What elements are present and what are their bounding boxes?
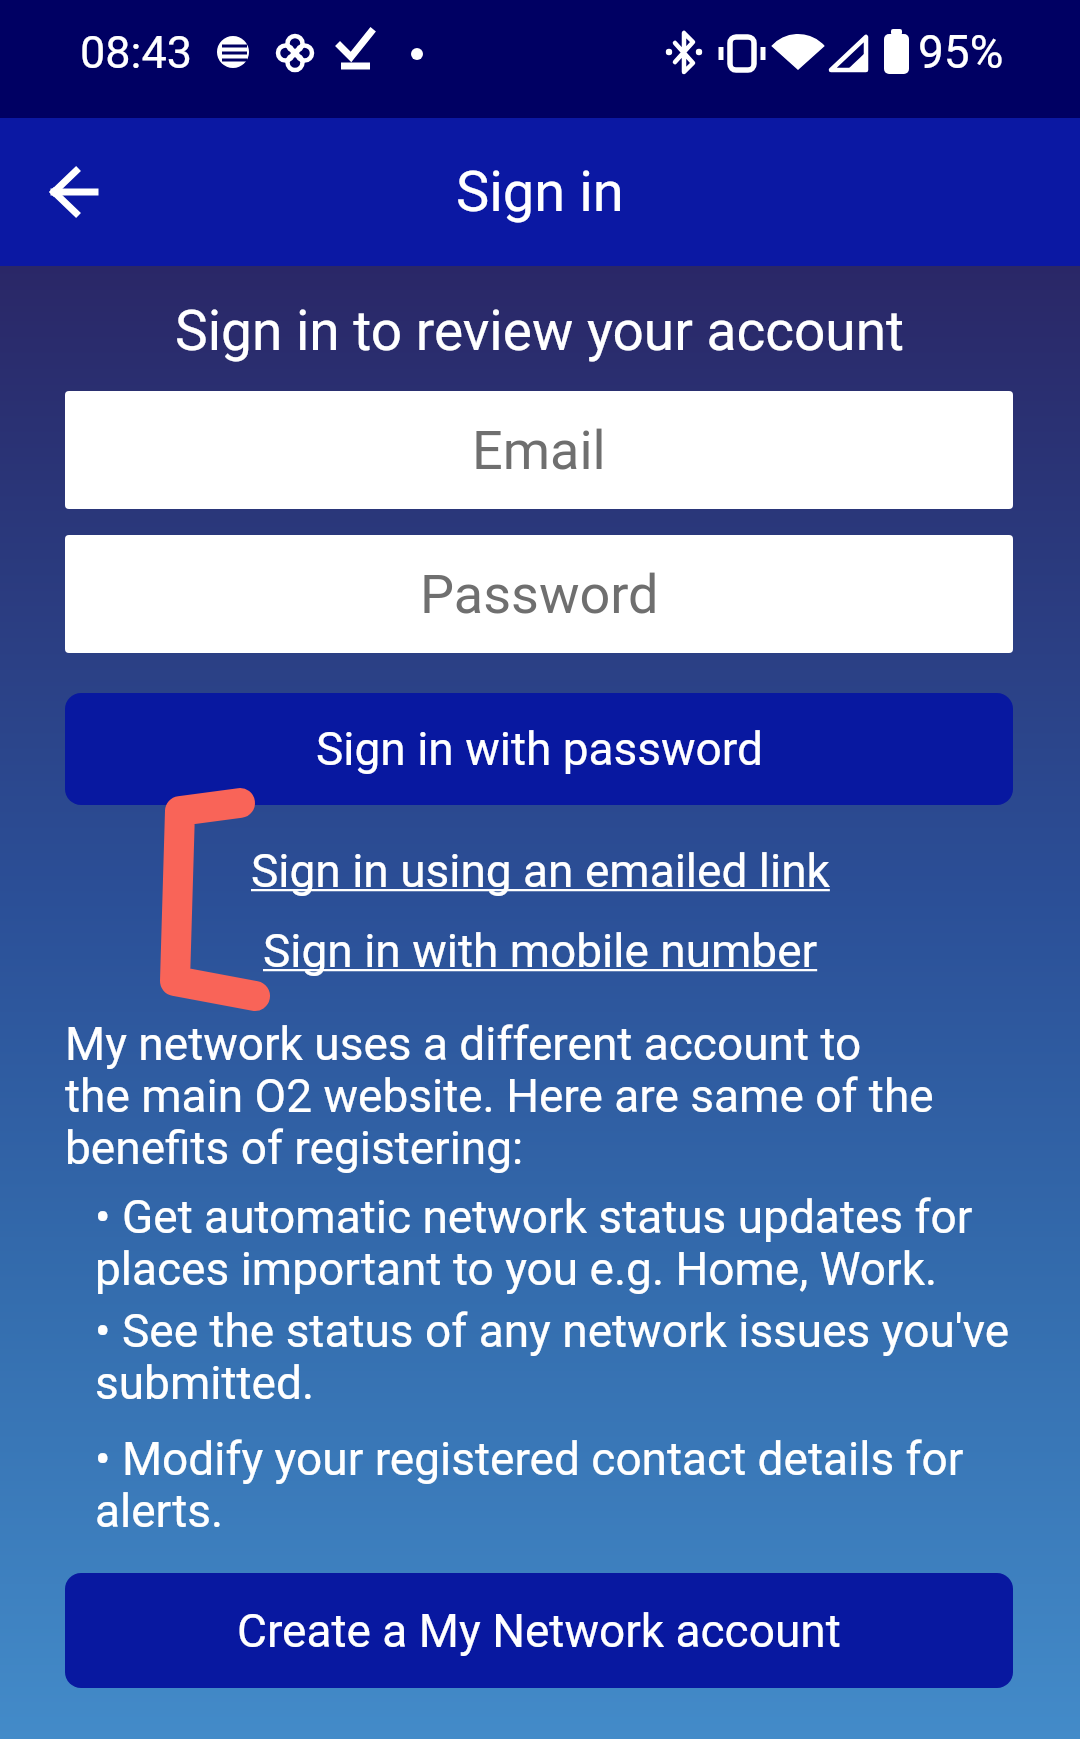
staticText: Sign in <box>456 159 624 225</box>
button[interactable]: Sign in using an emailed link <box>251 844 830 898</box>
staticText: Password <box>420 563 659 626</box>
staticText: • Modify your registered contact details… <box>95 1432 964 1538</box>
staticText: Sign in using an emailed link <box>251 844 830 898</box>
staticText: Sign in to review your account <box>175 299 905 363</box>
button[interactable] <box>40 158 108 226</box>
staticText: Sign in with password <box>316 722 763 776</box>
staticText: 08:43 <box>80 26 193 79</box>
staticText: Create a My Network account <box>237 1604 841 1658</box>
staticText: Email <box>472 419 606 482</box>
button[interactable]: Password <box>65 535 1013 653</box>
staticText: 95% <box>918 25 1004 79</box>
button[interactable]: Sign in with mobile number <box>263 924 818 978</box>
staticText: • Get automatic network status updates f… <box>95 1190 973 1296</box>
button[interactable]: Sign in with password <box>65 693 1013 805</box>
staticText: My network uses a different account to t… <box>65 1017 934 1175</box>
button[interactable]: Create a My Network account <box>65 1573 1013 1688</box>
button[interactable]: Email <box>65 391 1013 509</box>
staticText: • See the status of any network issues y… <box>95 1304 1010 1410</box>
staticText: Sign in with mobile number <box>263 924 818 978</box>
